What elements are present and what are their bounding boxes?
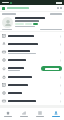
button[interactable] xyxy=(0,81,64,89)
button[interactable]: Activity xyxy=(16,108,32,120)
button[interactable] xyxy=(0,97,64,105)
button[interactable]: More options xyxy=(60,7,62,9)
button[interactable]: Menu xyxy=(2,7,5,10)
button[interactable]: Account xyxy=(48,108,64,120)
button[interactable]: Search xyxy=(57,7,59,9)
button[interactable] xyxy=(2,17,62,28)
button[interactable] xyxy=(0,89,64,97)
button[interactable] xyxy=(0,48,64,56)
button[interactable] xyxy=(41,66,62,71)
button[interactable] xyxy=(0,56,64,64)
button[interactable] xyxy=(0,32,64,40)
button[interactable] xyxy=(0,64,64,73)
button[interactable] xyxy=(0,40,64,48)
button[interactable]: Home xyxy=(0,108,16,120)
button[interactable] xyxy=(0,73,64,81)
button[interactable]: Services xyxy=(32,108,48,120)
